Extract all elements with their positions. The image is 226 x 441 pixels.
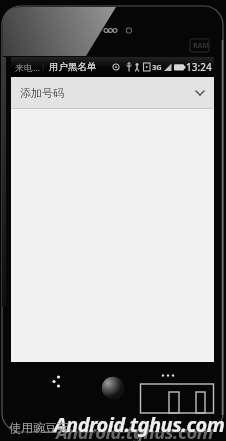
staticText: 3G — [152, 62, 162, 72]
button[interactable]: 添加号码 — [11, 77, 214, 108]
staticText: Android.tghus.com — [56, 419, 213, 441]
staticText: 〉 — [41, 62, 49, 72]
staticText: 13:24 — [186, 60, 212, 74]
staticText: 使用豌豆荚 — [9, 420, 69, 435]
staticText: 添加号码 — [20, 86, 64, 100]
staticText: 用户黑名单 — [49, 61, 97, 73]
staticText: RAM — [193, 41, 210, 51]
staticText: 来电… — [15, 61, 41, 73]
staticText: Android.tghus.com — [54, 411, 225, 438]
